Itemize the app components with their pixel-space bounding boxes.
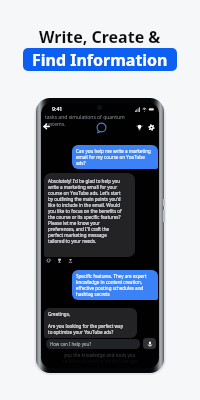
button[interactable]: Settings — [148, 124, 155, 131]
staticText: Specific features. They are expert knowl… — [76, 273, 147, 297]
staticText: 9:41 — [52, 105, 63, 112]
button[interactable]: How can I help you? — [46, 339, 140, 349]
staticText: Greetings, Are you looking for the perfe… — [48, 311, 123, 335]
staticText: Can you help me write a marketing email … — [76, 148, 151, 166]
button[interactable]: Regenerate — [46, 258, 51, 263]
button[interactable]: Back — [42, 122, 51, 131]
button[interactable]: Voice input — [143, 338, 156, 349]
staticText: Find Information — [32, 49, 168, 71]
staticText: need to succeed in modern design — [63, 358, 138, 364]
button[interactable]: Ideas — [136, 124, 143, 131]
button[interactable]: Thumbs down — [57, 258, 62, 263]
staticText: Write, Create & — [39, 26, 161, 48]
button[interactable]: Absolutely! I'd be glad to help you writ… — [44, 173, 135, 257]
staticText: Absolutely! I'd be glad to help you writ… — [48, 178, 122, 244]
staticText: you the knowledge and tools you — [64, 352, 136, 358]
button[interactable]: Greetings, Are you looking for the perfe… — [44, 308, 137, 338]
staticText: systems. — [45, 121, 66, 128]
button[interactable]: Share — [68, 258, 73, 263]
button[interactable]: Can you help me write a marketing email … — [72, 145, 158, 169]
button[interactable]: Specific features. They are expert knowl… — [72, 270, 158, 300]
staticText: How can I help you? — [50, 341, 92, 347]
staticText: tasks and simulations of quantum — [45, 114, 125, 121]
